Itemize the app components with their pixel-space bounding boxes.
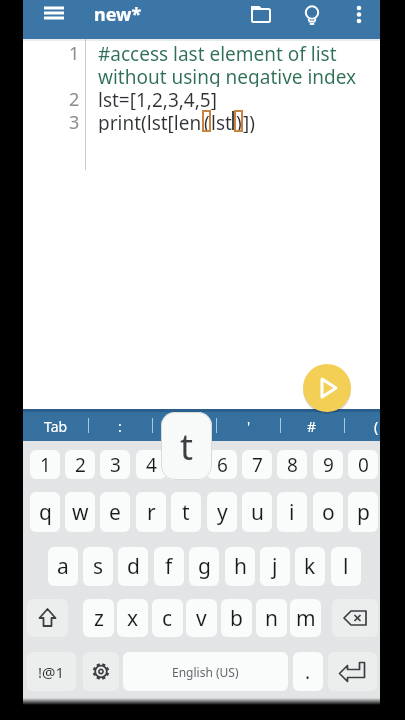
staticText: l (343, 552, 349, 581)
staticText: #access last element of list (98, 41, 337, 64)
staticText: o (322, 498, 335, 527)
button[interactable]: ' (223, 411, 275, 441)
staticText: a (57, 552, 69, 581)
button[interactable]: m (290, 599, 321, 637)
staticText: p (357, 498, 370, 527)
button[interactable]: s (83, 547, 113, 586)
button[interactable]: w (65, 492, 95, 532)
button[interactable]: j (260, 547, 290, 586)
staticText: t (182, 498, 190, 527)
staticText: without using negative index (98, 64, 357, 87)
staticText: 3 (69, 110, 80, 133)
button[interactable]: r (136, 492, 166, 532)
staticText: 8 (287, 452, 298, 478)
staticText: 9 (323, 452, 334, 478)
button[interactable]: ( (350, 411, 402, 441)
button[interactable] (83, 652, 119, 691)
button[interactable] (298, 1, 326, 29)
staticText: 1 (69, 41, 80, 64)
staticText: 7 (252, 452, 263, 478)
button[interactable]: a (48, 547, 78, 586)
staticText: r (147, 498, 156, 527)
button[interactable]: . (293, 652, 323, 691)
button[interactable]: 9 (313, 450, 343, 479)
button[interactable]: f (154, 547, 184, 586)
button[interactable]: g (189, 547, 219, 586)
button[interactable]: o (313, 492, 343, 532)
button[interactable]: 5 (171, 450, 201, 479)
button[interactable]: c (152, 599, 183, 637)
button[interactable]: p (348, 492, 378, 532)
button[interactable]: n (256, 599, 287, 637)
staticText: !@1 (38, 662, 65, 682)
button[interactable]: 4 (136, 450, 166, 479)
button[interactable]: 7 (242, 450, 272, 479)
staticText: 2 (69, 87, 80, 110)
button[interactable]: 1 (30, 450, 60, 479)
button[interactable]: # (286, 411, 338, 441)
staticText: u (251, 498, 264, 527)
staticText: English (US) (172, 664, 239, 680)
button[interactable]: i (277, 492, 307, 532)
staticText: v (196, 604, 207, 633)
staticText: n (265, 604, 278, 633)
staticText: g (198, 552, 211, 581)
staticText: y (217, 498, 228, 527)
staticText: print(lst[len (98, 110, 202, 133)
button[interactable] (328, 652, 377, 691)
button[interactable]: 8 (277, 450, 307, 479)
staticText: 4 (146, 452, 157, 478)
button[interactable] (27, 599, 68, 637)
button[interactable]: 6 (207, 450, 237, 479)
staticText: h (234, 552, 247, 581)
button[interactable]: 3 (100, 450, 130, 479)
staticText: . (305, 659, 311, 685)
button[interactable]: Tab (30, 411, 82, 441)
button[interactable]: : (94, 411, 146, 441)
button[interactable]: e (100, 492, 130, 532)
staticText: q (39, 498, 52, 527)
button[interactable] (332, 599, 378, 637)
staticText: 5 (181, 452, 192, 478)
staticText: 3 (110, 452, 121, 478)
staticText: ( (374, 417, 379, 436)
staticText: e (109, 498, 121, 527)
button[interactable]: q (30, 492, 60, 532)
button[interactable]: t (171, 492, 201, 532)
button[interactable]: l (331, 547, 361, 586)
button[interactable] (303, 364, 351, 412)
button[interactable]: d (118, 547, 148, 586)
staticText: j (272, 552, 278, 581)
staticText: 6 (217, 452, 228, 478)
button[interactable] (247, 1, 275, 29)
staticText: new* (94, 2, 142, 27)
staticText: 1 (40, 452, 51, 478)
button[interactable] (345, 1, 373, 29)
staticText: ' (247, 417, 251, 436)
staticText: i (289, 498, 295, 527)
button[interactable]: u (242, 492, 272, 532)
staticText: Tab (44, 417, 68, 436)
staticText: m (296, 604, 316, 633)
button[interactable]: h (225, 547, 255, 586)
button[interactable]: English (US) (123, 652, 288, 691)
button[interactable]: k (295, 547, 325, 586)
staticText: c (162, 604, 173, 633)
button[interactable]: v (186, 599, 217, 637)
button[interactable]: z (83, 599, 114, 637)
button[interactable]: 2 (65, 450, 95, 479)
button[interactable]: b (221, 599, 252, 637)
staticText: z (94, 604, 104, 633)
button[interactable]: y (207, 492, 237, 532)
staticText: b (230, 604, 243, 633)
button[interactable]: x (117, 599, 148, 637)
staticText: w (72, 498, 89, 527)
button[interactable]: !@1 (27, 652, 76, 691)
staticText: 2 (75, 452, 86, 478)
staticText: x (127, 604, 139, 633)
button[interactable] (37, 2, 71, 28)
button[interactable]: 0 (348, 450, 378, 479)
staticText: f (165, 552, 173, 581)
staticText: ]) (243, 110, 255, 133)
staticText: lst (211, 110, 232, 133)
